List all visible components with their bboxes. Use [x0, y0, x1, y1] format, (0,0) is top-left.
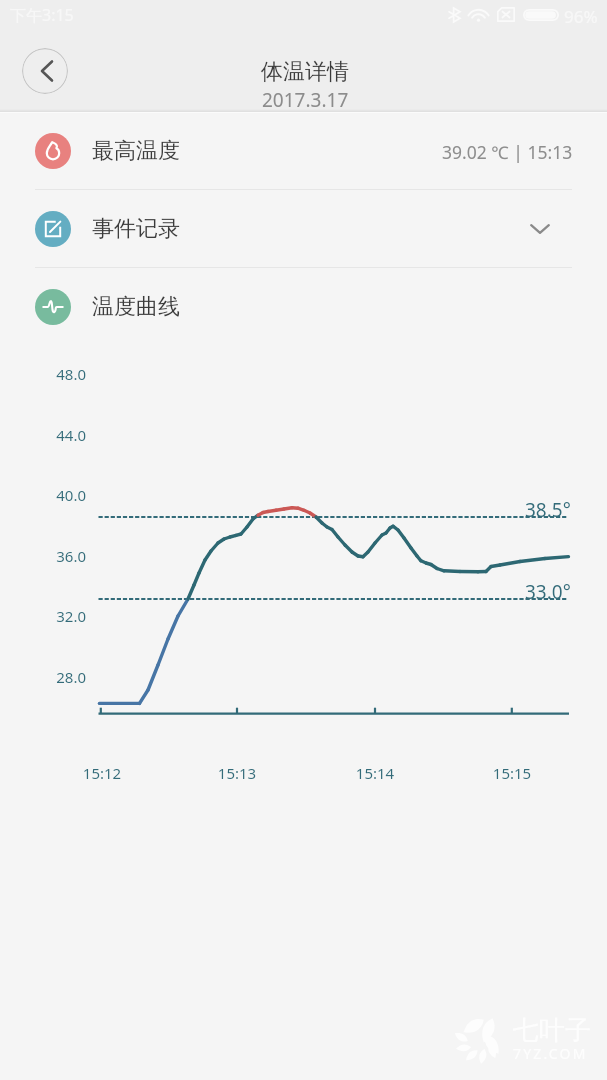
- staticText: 15:13: [212, 763, 262, 783]
- button[interactable]: Back: [22, 48, 68, 94]
- staticText: 40.0: [54, 485, 86, 505]
- staticText: 事件记录: [92, 215, 180, 243]
- staticText: 33.0°: [525, 579, 571, 605]
- staticText: 15:14: [350, 763, 400, 783]
- staticText: 38.5°: [525, 497, 571, 523]
- staticText: 32.0: [54, 606, 86, 626]
- staticText: 44.0: [54, 425, 86, 445]
- staticText: 28.0: [54, 667, 86, 687]
- button[interactable]: 事件记录: [0, 190, 607, 268]
- button[interactable]: 温度曲线: [0, 268, 607, 346]
- staticText: 最高温度: [92, 137, 180, 165]
- staticText: 96%: [564, 5, 598, 28]
- staticText: 体温详情: [261, 58, 349, 86]
- staticText: 温度曲线: [92, 293, 180, 321]
- staticText: 36.0: [54, 546, 86, 566]
- staticText: 48.0: [54, 364, 86, 384]
- staticText: 15:12: [77, 763, 127, 783]
- staticText: 2017.3.17: [262, 87, 349, 113]
- button[interactable]: 最高温度: [0, 112, 607, 190]
- staticText: 15:15: [487, 763, 537, 783]
- staticText: 39.02 ℃ | 15:13: [442, 140, 573, 164]
